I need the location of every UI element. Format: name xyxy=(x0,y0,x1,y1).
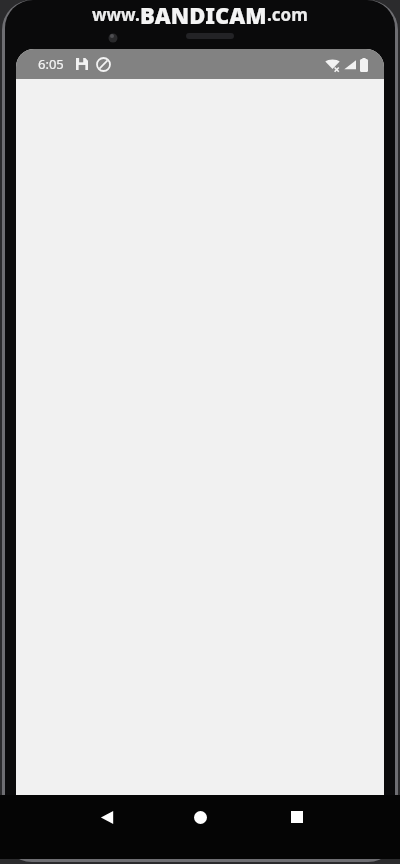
staticText: 6:05 xyxy=(38,55,64,73)
staticText: .com xyxy=(267,3,308,26)
staticText: BANDICAM xyxy=(140,0,267,26)
button[interactable]: Back xyxy=(84,795,130,839)
button[interactable]: Home xyxy=(177,795,223,839)
button[interactable]: Recent apps xyxy=(274,795,320,839)
staticText: www. xyxy=(92,3,140,26)
